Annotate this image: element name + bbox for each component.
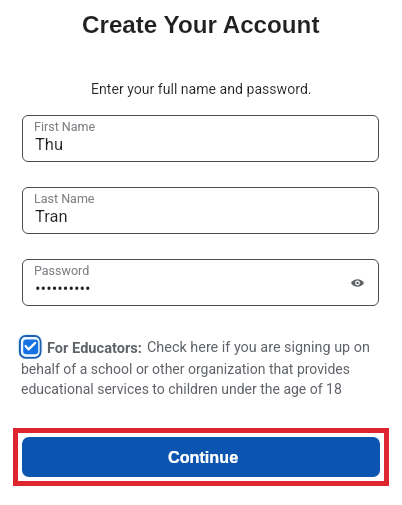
staticText: Continue: [168, 448, 239, 466]
button[interactable]: First Name: [22, 115, 379, 162]
staticText: behalf of a school or other organization…: [21, 361, 350, 377]
staticText: For Educators:: [47, 339, 142, 356]
button[interactable]: Last Name: [22, 187, 379, 234]
staticText: Check here if you are signing up on: [147, 339, 370, 356]
staticText: Enter your full name and password.: [91, 81, 312, 98]
button[interactable]: Continue: [22, 437, 380, 477]
button[interactable]: For Educators checkbox: [18, 334, 44, 360]
staticText: Create Your Account: [82, 11, 320, 38]
staticText: educational services to children under t…: [21, 381, 342, 397]
staticText: Thu: [35, 135, 64, 154]
staticText: Password: [34, 263, 90, 278]
button[interactable]: Show password: [344, 270, 370, 296]
staticText: Last Name: [34, 191, 95, 206]
staticText: First Name: [34, 119, 96, 134]
staticText: ••••••••••: [35, 279, 91, 298]
staticText: Tran: [35, 207, 68, 226]
button[interactable]: Password: [22, 259, 379, 306]
